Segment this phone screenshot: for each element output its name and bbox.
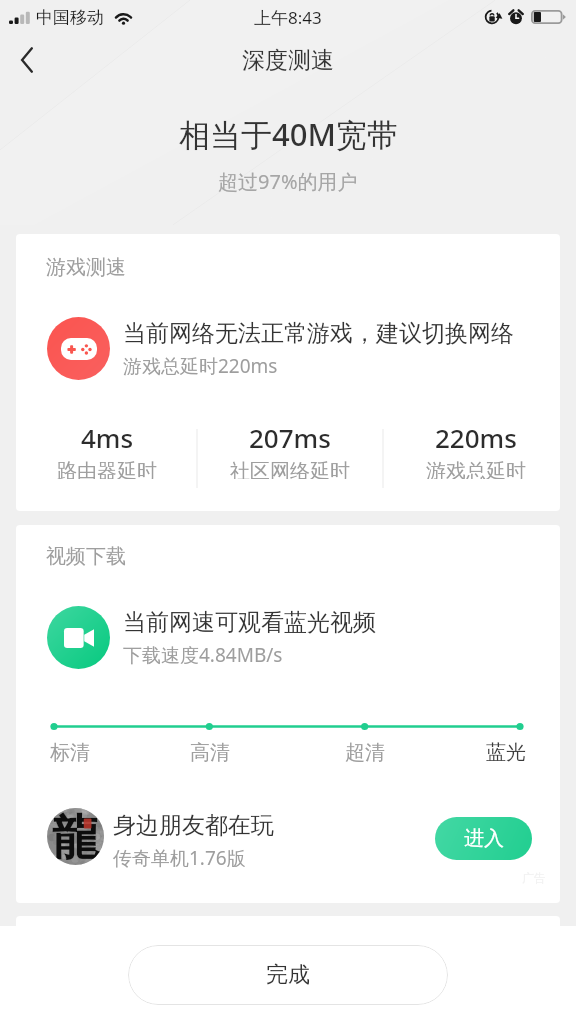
staticText: 视频下载 [46,544,126,569]
staticText: 路由器延时 [57,459,157,479]
staticText: 相当于40M宽带 [179,113,398,155]
staticText: 游戏总延时220ms [123,353,278,379]
staticText: 超过97%的用户 [218,168,358,195]
staticText: 上午8:43 [254,6,322,29]
button[interactable]: 当前网络无法正常游戏，建议切换网络 [16,317,560,380]
staticText: 标清 [50,740,90,762]
button[interactable]: 龍 [47,811,532,871]
staticText: 当前网速可观看蓝光视频 [123,608,376,637]
button[interactable]: 完成 [128,945,448,1005]
staticText: 超清 [345,740,385,762]
staticText: 广告 [522,870,546,885]
button[interactable]: 当前网速可观看蓝光视频 [16,606,560,669]
staticText: 身边朋友都在玩 [113,811,274,840]
staticText: 中国移动 [36,7,104,28]
staticText: 传奇单机1.76版 [113,845,246,871]
staticText: 游戏测速 [46,255,126,280]
staticText: 4ms [81,420,134,455]
staticText: 207ms [249,420,331,455]
staticText: 下载速度4.84MB/s [123,642,283,668]
staticText: 龍 [52,808,100,865]
staticText: 高清 [190,740,230,762]
staticText: 社区网络延时 [230,459,350,479]
staticText: 进入 [464,826,504,851]
staticText: 完成 [266,961,310,989]
staticText: 220ms [435,420,517,455]
staticText: 蓝光 [486,740,526,762]
staticText: 游戏总延时 [426,459,526,479]
button[interactable]: 进入 [435,817,532,860]
button[interactable]: 返回 [0,34,52,86]
staticText: 当前网络无法正常游戏，建议切换网络 [123,319,514,348]
staticText: 深度测速 [242,46,334,75]
